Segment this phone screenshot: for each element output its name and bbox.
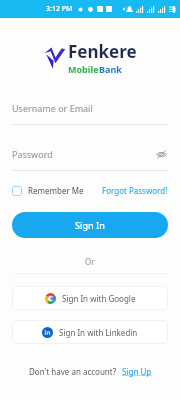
- staticText: Fenkere: [68, 40, 137, 63]
- button[interactable]: Forgot Password!: [102, 185, 168, 196]
- staticText: 3:12 PM: [46, 4, 73, 14]
- staticText: Bank: [99, 63, 122, 75]
- staticText: Sign In with Google: [62, 293, 136, 304]
- staticText: Or: [85, 256, 95, 267]
- staticText: Sign Up: [122, 366, 152, 377]
- button[interactable]: Sign Up: [122, 366, 152, 377]
- button[interactable]: Sign In with Google: [12, 286, 168, 310]
- button[interactable]: Password: [12, 143, 168, 171]
- staticText: Username or Email: [12, 102, 93, 114]
- staticText: Password: [12, 148, 53, 160]
- button[interactable]: Show password: [154, 147, 168, 161]
- button[interactable]: Sign In with Linkedin: [12, 320, 168, 344]
- staticText: Sign In with Linkedin: [59, 327, 138, 338]
- staticText: Mobile: [68, 63, 99, 75]
- staticText: Forgot Password!: [102, 185, 168, 196]
- button[interactable]: Username or Email: [12, 97, 168, 125]
- staticText: Sign In: [75, 219, 105, 231]
- button[interactable]: Sign In: [12, 212, 168, 238]
- staticText: Don't have an account?: [29, 366, 117, 377]
- button[interactable]: Remember Me: [12, 185, 84, 196]
- staticText: Remember Me: [28, 185, 84, 196]
